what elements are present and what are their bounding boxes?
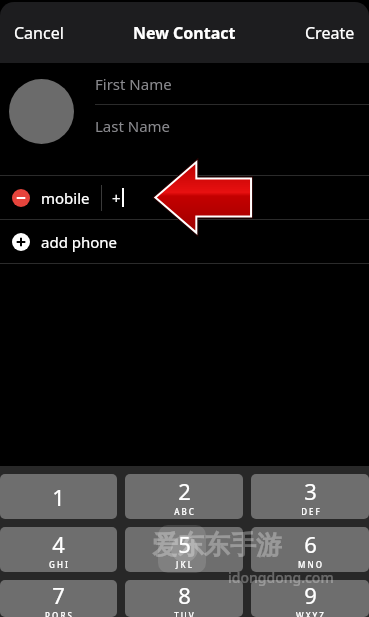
button[interactable]: First Name xyxy=(95,63,369,104)
staticText: P Q R S xyxy=(45,610,72,617)
staticText: 5 xyxy=(178,529,191,559)
staticText: A B C xyxy=(174,506,194,517)
staticText: W X Y Z xyxy=(296,610,324,617)
staticText: idongdong.com xyxy=(228,568,334,587)
staticText: 4 xyxy=(52,529,65,559)
button[interactable]: 7 xyxy=(0,580,117,617)
staticText: 3 xyxy=(304,476,317,506)
button[interactable]: 8 xyxy=(125,580,243,617)
staticText: T U V xyxy=(174,610,194,617)
staticText: 8 xyxy=(178,580,191,610)
staticText: New Contact xyxy=(133,22,236,44)
button[interactable]: 3 xyxy=(251,474,369,519)
staticText: 2 xyxy=(178,476,191,506)
staticText: M N O xyxy=(298,559,322,570)
button[interactable]: Cancel xyxy=(4,14,74,52)
staticText: 7 xyxy=(52,580,65,610)
button[interactable]: add phone xyxy=(0,220,369,263)
button[interactable]: Last Name xyxy=(95,105,369,146)
staticText: Cancel xyxy=(14,22,64,44)
staticText: Last Name xyxy=(95,116,171,136)
staticText: 6 xyxy=(304,529,317,559)
staticText: add phone xyxy=(41,232,118,252)
button[interactable]: Add photo xyxy=(9,79,74,144)
staticText: D E F xyxy=(301,506,320,517)
button[interactable]: 4 xyxy=(0,527,117,572)
staticText: + xyxy=(112,188,121,208)
staticText: 爱东东手游 xyxy=(152,529,282,562)
staticText: First Name xyxy=(95,74,172,94)
staticText: 1 xyxy=(52,482,65,512)
button[interactable]: mobile xyxy=(0,176,369,219)
button[interactable]: Create xyxy=(295,14,365,52)
staticText: G H I xyxy=(49,559,68,570)
button[interactable]: 5 xyxy=(125,527,243,572)
staticText: Create xyxy=(305,22,355,44)
button[interactable]: 2 xyxy=(125,474,243,519)
staticText: mobile xyxy=(41,188,90,208)
button[interactable]: 1 xyxy=(0,474,117,519)
button[interactable]: 6 xyxy=(251,527,369,572)
staticText: J K L xyxy=(176,559,192,570)
button[interactable]: 9 xyxy=(251,580,369,617)
staticText: 9 xyxy=(304,580,317,610)
